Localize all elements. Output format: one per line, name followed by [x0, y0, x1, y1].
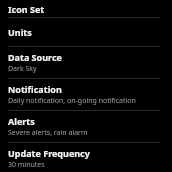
button[interactable]: Data Source — [0, 47, 172, 78]
staticText: Units — [8, 26, 32, 38]
staticText: Alerts — [8, 115, 35, 127]
staticText: Update Frequency — [8, 147, 90, 159]
staticText: 30 minutes — [8, 160, 45, 170]
staticText: Daily notification, on-going notificatio… — [8, 96, 136, 106]
staticText: Icon Set — [8, 3, 45, 15]
staticText: Dark Sky — [8, 64, 37, 74]
button[interactable]: Alerts — [0, 111, 172, 142]
button[interactable]: Icon Set — [0, 0, 172, 17]
staticText: Data Source — [8, 51, 62, 63]
staticText: Severe alerts, rain alarm — [8, 128, 88, 138]
button[interactable]: Update Frequency — [0, 143, 172, 172]
staticText: Notification — [8, 83, 62, 95]
button[interactable]: Notification — [0, 79, 172, 110]
button[interactable]: Units — [0, 18, 172, 46]
